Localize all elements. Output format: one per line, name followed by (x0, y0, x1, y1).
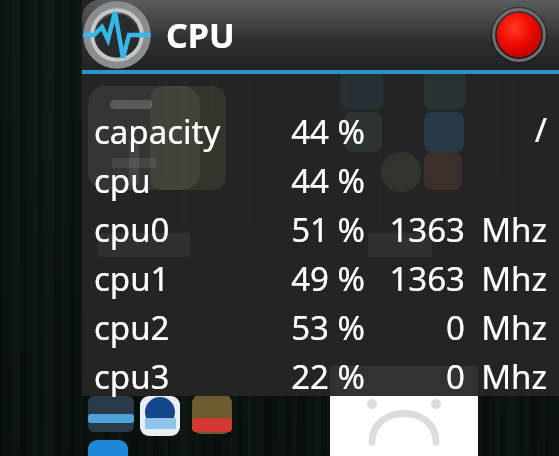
button[interactable]: cpu1 (82, 254, 559, 303)
staticText: Mhz (481, 256, 547, 301)
staticText: Mhz (481, 354, 547, 399)
button[interactable]: CPU monitor (82, 0, 559, 70)
button[interactable]: Stop monitoring (491, 7, 547, 63)
staticText: Mhz (481, 305, 547, 350)
staticText: 44 % (291, 109, 365, 154)
staticText: 44 % (291, 158, 365, 203)
staticText: / 1.00 (465, 107, 547, 156)
staticText: cpu1 (94, 256, 170, 301)
staticText: cpu0 (94, 207, 170, 252)
staticText: 1363 (389, 256, 465, 301)
staticText: 0 (446, 354, 465, 399)
staticText: CPU (166, 12, 235, 58)
button[interactable]: cpu2 (82, 303, 559, 352)
staticText: capacity (94, 109, 221, 154)
staticText: 51 % (291, 207, 365, 252)
staticText: Mhz (481, 207, 547, 252)
staticText: 1363 (389, 207, 465, 252)
button[interactable]: cpu (82, 156, 559, 205)
button[interactable]: CPU monitor (84, 2, 150, 68)
staticText: cpu3 (94, 354, 170, 399)
staticText: 49 % (291, 256, 365, 301)
staticText: 53 % (291, 305, 365, 350)
staticText: cpu2 (94, 305, 170, 350)
button[interactable]: cpu0 (82, 205, 559, 254)
button[interactable]: cpu3 (82, 352, 559, 401)
button[interactable]: capacity (82, 107, 559, 156)
staticText: cpu (94, 158, 151, 203)
staticText: 22 % (291, 354, 365, 399)
staticText: 0 (446, 305, 465, 350)
